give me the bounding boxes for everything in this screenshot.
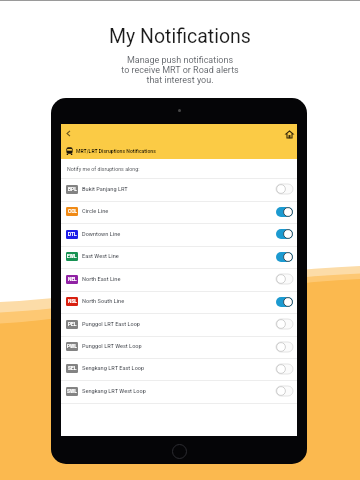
staticText: Circle Line: [82, 208, 109, 215]
staticText: DTL: [68, 232, 77, 238]
staticText: Punggol LRT East Loop: [82, 321, 140, 328]
staticText: MRT/LRT Disruptions Notifications: [76, 148, 156, 154]
button[interactable]: NEL: [61, 269, 297, 292]
button[interactable]: On: [276, 207, 293, 217]
staticText: Manage push notifications to receive MRT…: [121, 55, 239, 85]
staticText: East West Line: [82, 253, 119, 260]
staticText: SEL: [68, 366, 77, 372]
button[interactable]: Home: [286, 131, 293, 138]
staticText: BPL: [68, 187, 77, 193]
staticText: Notify me of disruptions along:: [67, 166, 140, 172]
staticText: Sengkang LRT West Loop: [82, 388, 146, 395]
button[interactable]: CCL: [61, 202, 297, 224]
staticText: NEL: [68, 277, 77, 283]
staticText: PWL: [67, 344, 77, 350]
button[interactable]: Off: [276, 342, 293, 352]
button[interactable]: DTL: [61, 224, 297, 247]
button[interactable]: NSL: [61, 292, 297, 314]
button[interactable]: SWL: [61, 381, 297, 404]
button[interactable]: On: [276, 229, 293, 239]
button[interactable]: Off: [276, 184, 293, 194]
button[interactable]: On: [276, 252, 293, 262]
staticText: North South Line: [82, 298, 125, 305]
button[interactable]: Off: [276, 386, 293, 396]
button[interactable]: SEL: [61, 359, 297, 381]
button[interactable]: EWL: [61, 247, 297, 269]
staticText: Punggol LRT West Loop: [82, 343, 142, 350]
staticText: PEL: [68, 322, 77, 328]
staticText: My Notifications: [109, 25, 251, 48]
staticText: Downtown Line: [82, 231, 121, 238]
button[interactable]: PEL: [61, 314, 297, 337]
staticText: CCL: [68, 209, 77, 215]
button[interactable]: Off: [276, 319, 293, 329]
staticText: Bukit Panjang LRT: [82, 186, 128, 193]
button[interactable]: PWL: [61, 337, 297, 359]
button[interactable]: Off: [276, 274, 293, 284]
button[interactable]: Off: [276, 364, 293, 374]
staticText: SWL: [67, 389, 77, 395]
staticText: North East Line: [82, 276, 121, 283]
staticText: Sengkang LRT East Loop: [82, 365, 145, 372]
button[interactable]: BPL: [61, 179, 297, 202]
button[interactable]: Back: [62, 127, 75, 140]
staticText: EWL: [67, 254, 77, 260]
button[interactable]: On: [276, 297, 293, 307]
staticText: NSL: [68, 299, 77, 305]
